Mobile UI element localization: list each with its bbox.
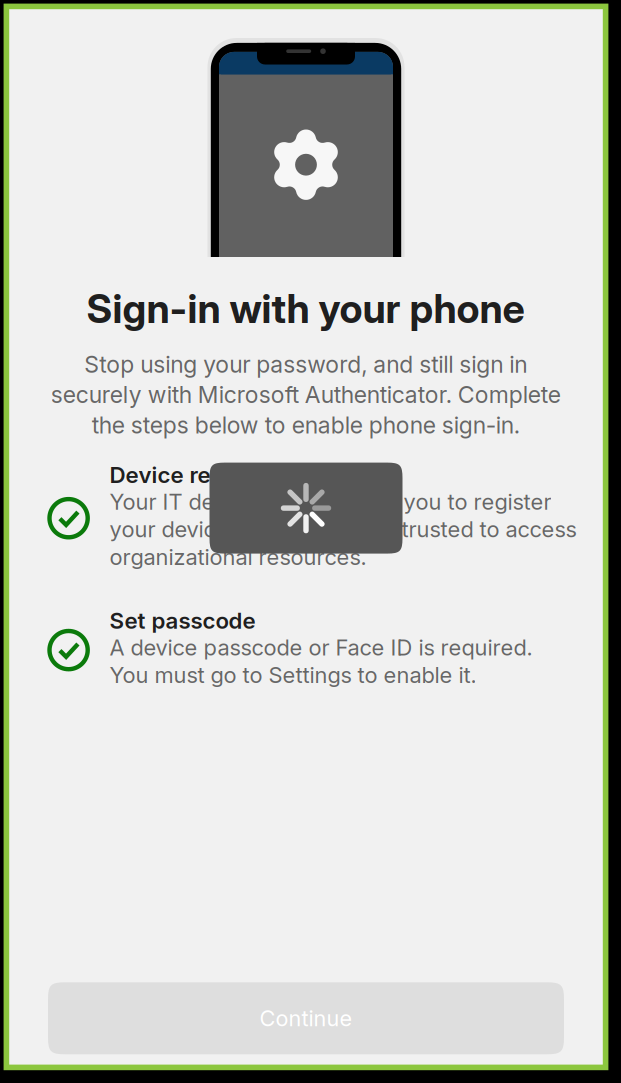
staticText: A device passcode or Face ID is required… (109, 634, 532, 688)
button[interactable]: Continue (48, 982, 564, 1054)
staticText: Stop using your password, and still sign… (51, 350, 561, 439)
staticText: Sign-in with your phone (87, 285, 525, 332)
staticText: Your IT department requires you to regis… (109, 488, 576, 570)
staticText: Set passcode (109, 607, 255, 634)
staticText: Continue (259, 1005, 352, 1031)
staticText: Device registration (109, 461, 313, 488)
